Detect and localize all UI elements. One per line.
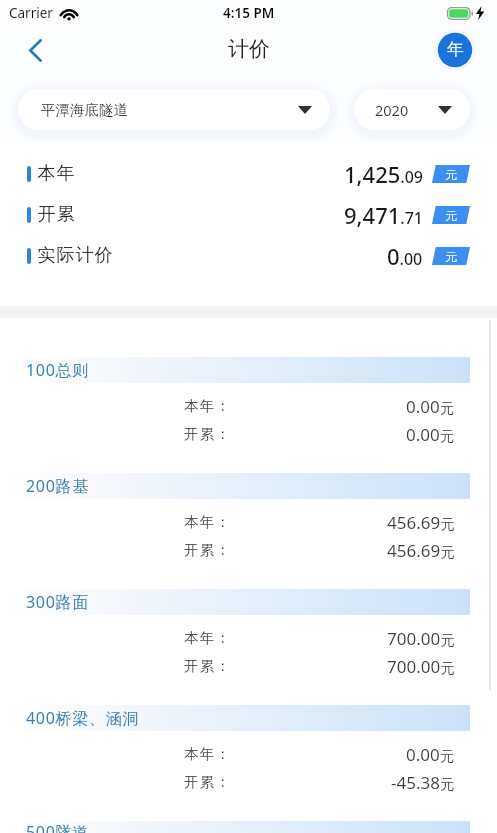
button[interactable]: 2020 [375, 89, 452, 130]
staticText: 1,425.09 [344, 159, 423, 189]
staticText: 开累： [184, 657, 232, 675]
staticText: 开累： [184, 773, 232, 791]
button[interactable]: 实际计价 [27, 235, 470, 276]
staticText: 500隧道 [26, 821, 89, 833]
button[interactable]: 平潭海底隧道 [41, 89, 312, 130]
staticText: 元 [445, 249, 457, 264]
staticText: 本年： [184, 513, 232, 531]
button[interactable]: 切换年度 [434, 29, 476, 71]
staticText: 400桥梁、涵洞 [26, 707, 140, 729]
staticText: 700.00元 [387, 655, 455, 678]
staticText: 4:15 PM [223, 4, 275, 22]
staticText: 本年 [37, 162, 75, 185]
staticText: 456.69元 [387, 539, 455, 562]
staticText: Carrier [9, 4, 53, 22]
staticText: 平潭海底隧道 [41, 101, 128, 119]
staticText: -45.38元 [391, 771, 455, 794]
staticText: 2020 [375, 100, 409, 120]
staticText: 本年： [184, 745, 232, 763]
button[interactable]: 本年 [27, 153, 470, 194]
staticText: 本年： [184, 629, 232, 647]
staticText: 100总则 [26, 359, 89, 381]
button[interactable]: Back [13, 28, 57, 72]
staticText: 9,471.71 [344, 200, 423, 230]
staticText: 实际计价 [37, 244, 113, 267]
staticText: 元 [445, 167, 457, 182]
staticText: 300路面 [26, 591, 89, 613]
staticText: 200路基 [26, 475, 89, 497]
staticText: 700.00元 [387, 627, 455, 650]
staticText: 计价 [228, 36, 270, 62]
button[interactable]: 300路面 [0, 589, 497, 705]
button[interactable]: 开累 [27, 194, 470, 235]
button[interactable]: 100总则 [0, 357, 497, 473]
button[interactable]: 400桥梁、涵洞 [0, 705, 497, 821]
button[interactable]: 200路基 [0, 473, 497, 589]
staticText: 元 [445, 208, 457, 223]
staticText: 456.69元 [387, 511, 455, 534]
staticText: 开累： [184, 425, 232, 443]
staticText: 0.00元 [406, 743, 455, 766]
staticText: 0.00 [387, 241, 423, 271]
staticText: 0.00元 [406, 423, 455, 446]
staticText: 开累 [37, 203, 75, 226]
staticText: 0.00元 [406, 395, 455, 418]
staticText: 年 [447, 39, 464, 60]
staticText: 开累： [184, 541, 232, 559]
button[interactable]: 500隧道 [0, 821, 497, 833]
staticText: 本年： [184, 397, 232, 415]
